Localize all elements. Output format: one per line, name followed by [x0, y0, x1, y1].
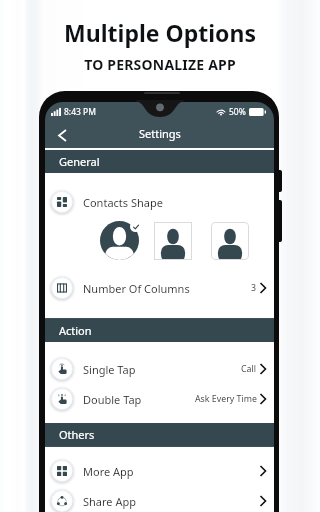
staticText: Call [241, 363, 257, 375]
staticText: Multiple Options [64, 17, 256, 48]
staticText: More App [83, 464, 134, 479]
button[interactable]: More App [45, 458, 274, 484]
button[interactable]: Contacts Shape [45, 189, 274, 215]
button[interactable]: Double Tap [45, 386, 274, 412]
button[interactable]: Back [49, 122, 75, 148]
button[interactable]: Square contact shape [154, 222, 192, 260]
button[interactable]: Single Tap [45, 356, 274, 382]
staticText: 50% [229, 106, 246, 118]
staticText: Contacts Shape [83, 195, 163, 210]
button[interactable]: Circle contact shape [100, 221, 140, 261]
staticText: Others [59, 427, 95, 442]
staticText: 8:43 PM [64, 106, 96, 118]
staticText: Single Tap [83, 362, 136, 377]
staticText: General [59, 154, 100, 169]
staticText: 3 [251, 282, 257, 294]
staticText: Double Tap [83, 392, 142, 407]
staticText: Share App [83, 494, 136, 509]
staticText: Number Of Columns [83, 281, 190, 296]
button[interactable]: Square contact shape [211, 222, 249, 260]
button[interactable]: Share App [45, 488, 274, 512]
staticText: Action [59, 323, 92, 338]
staticText: Settings [139, 126, 181, 141]
button[interactable]: Number Of Columns [45, 275, 274, 301]
staticText: Ask Every Time [195, 393, 257, 405]
staticText: TO PERSONALIZE APP [84, 55, 236, 74]
